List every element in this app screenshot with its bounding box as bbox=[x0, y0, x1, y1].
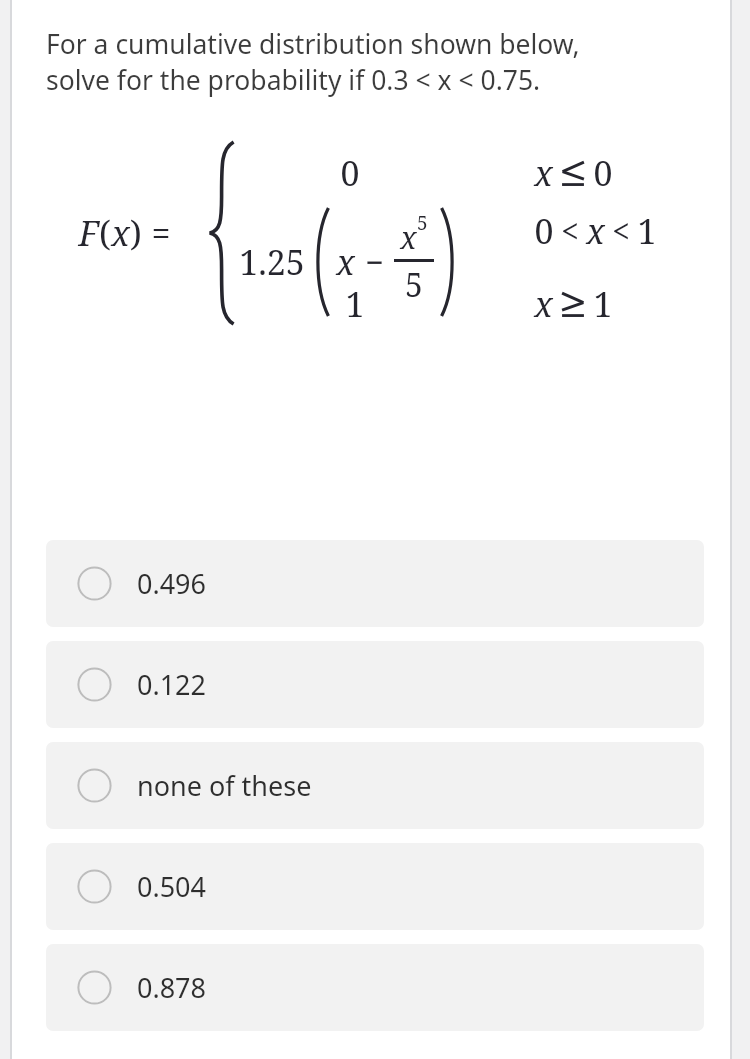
staticText: none of these bbox=[137, 767, 312, 804]
button[interactable]: 0.878 bbox=[46, 944, 704, 1031]
button[interactable]: none of these bbox=[46, 742, 704, 829]
staticText: 0.878 bbox=[137, 969, 207, 1006]
button[interactable]: 0.122 bbox=[46, 641, 704, 728]
staticText: x bbox=[400, 217, 417, 258]
staticText: For a cumulative distribution shown belo… bbox=[46, 26, 580, 62]
staticText: x bbox=[336, 239, 355, 285]
staticText: 0 bbox=[593, 150, 613, 196]
staticText: 1 bbox=[637, 208, 657, 254]
staticText: x bbox=[111, 210, 130, 256]
staticText: ( bbox=[99, 210, 111, 256]
staticText: 5 bbox=[405, 263, 423, 307]
staticText: solve for the probability if 0.3 < x < 0… bbox=[46, 62, 541, 98]
staticText: 1.25 bbox=[239, 239, 305, 285]
staticText: x bbox=[534, 281, 553, 327]
staticText: x bbox=[534, 150, 553, 196]
staticText: F bbox=[78, 210, 99, 256]
staticText: − bbox=[365, 240, 384, 284]
staticText: 0.122 bbox=[137, 666, 207, 703]
staticText: 1 bbox=[345, 281, 365, 327]
button[interactable]: 0.504 bbox=[46, 843, 704, 930]
button[interactable]: 0.496 bbox=[46, 540, 704, 627]
staticText: = bbox=[151, 210, 171, 256]
staticText: 0.496 bbox=[137, 565, 207, 602]
staticText: 1 bbox=[593, 281, 613, 327]
staticText: < bbox=[612, 209, 630, 253]
staticText: < bbox=[561, 209, 579, 253]
staticText: ) bbox=[130, 210, 142, 256]
staticText: 0.504 bbox=[137, 868, 207, 905]
staticText: 5 bbox=[417, 210, 428, 236]
staticText: 0 bbox=[340, 150, 360, 196]
staticText: x bbox=[586, 208, 605, 254]
staticText: 0 bbox=[534, 208, 554, 254]
